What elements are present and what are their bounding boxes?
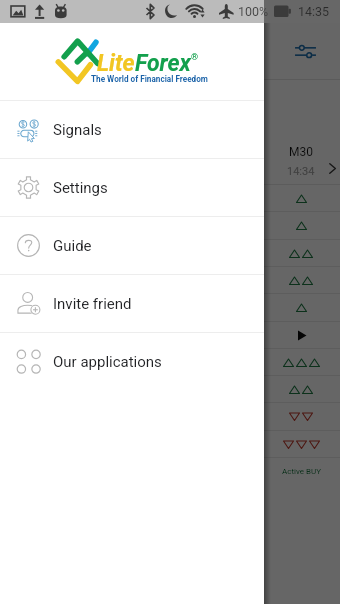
other: Invite friend	[17, 292, 40, 315]
button[interactable]	[0, 349, 340, 376]
button[interactable]	[0, 267, 340, 294]
staticText: Settings	[53, 179, 108, 197]
staticText: Guide	[53, 237, 92, 255]
staticText: 14:34	[287, 165, 315, 178]
button[interactable]	[0, 240, 340, 267]
button[interactable]	[0, 403, 340, 430]
button[interactable]	[0, 376, 340, 403]
staticText: 14:35	[298, 4, 330, 19]
button[interactable]	[0, 322, 340, 349]
button[interactable]	[0, 185, 340, 212]
staticText: ®	[191, 52, 199, 63]
button[interactable]: Guide	[0, 217, 264, 274]
button[interactable]: Our applications	[0, 333, 264, 390]
other: Guide	[17, 234, 40, 257]
button[interactable]: Invite friend	[0, 275, 264, 332]
staticText: M30	[289, 145, 313, 159]
other: Signals	[17, 118, 40, 141]
staticText: The World of Financial Freedom	[91, 74, 208, 84]
staticText: 100%	[238, 4, 269, 19]
button[interactable]	[0, 294, 340, 321]
staticText: Active BUY	[282, 467, 321, 476]
button[interactable]	[0, 212, 340, 239]
staticText: Invite friend	[53, 295, 132, 313]
button[interactable]: M30	[0, 140, 340, 184]
button[interactable]: Filter	[288, 34, 322, 68]
other: Settings	[17, 176, 40, 199]
staticText: Our applications	[53, 353, 162, 371]
button[interactable]	[0, 431, 340, 458]
button[interactable]: Settings	[0, 159, 264, 216]
other: Our applications	[17, 350, 40, 373]
staticText: Signals	[53, 121, 102, 139]
staticText: Forex	[135, 50, 191, 77]
staticText: Lite	[97, 50, 135, 77]
button[interactable]: Signals	[0, 101, 264, 158]
